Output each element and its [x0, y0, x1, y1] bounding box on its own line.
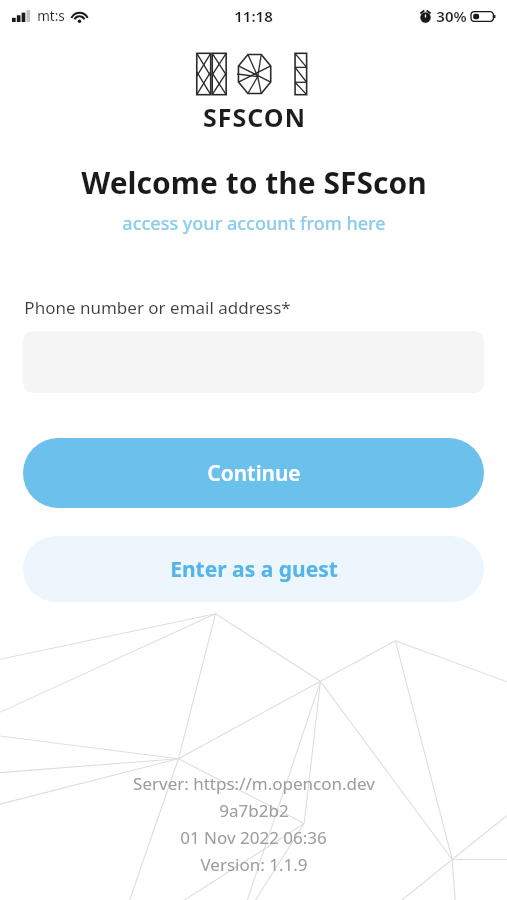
staticText: Enter as a guest — [170, 555, 338, 584]
staticText: 30% — [436, 6, 467, 26]
staticText: Server: https://m.opencon.dev — [133, 772, 375, 795]
staticText: mt:s — [37, 7, 65, 25]
staticText: SFSCON — [203, 100, 306, 134]
staticText: 9a7b2b2 — [219, 799, 289, 822]
staticText: 01 Nov 2022 06:36 — [180, 826, 327, 849]
staticText: 11:18 — [234, 6, 273, 26]
button[interactable]: Continue — [23, 438, 484, 508]
button[interactable]: Enter as a guest — [23, 536, 484, 602]
staticText: access your account from here — [122, 211, 386, 236]
staticText: Welcome to the SFScon — [81, 162, 427, 203]
staticText: Version: 1.1.9 — [200, 853, 308, 876]
staticText: Continue — [207, 459, 301, 488]
staticText: Phone number or email address* — [24, 296, 291, 319]
